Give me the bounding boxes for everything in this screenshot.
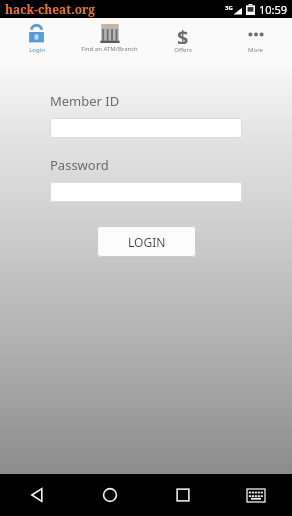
staticText: LOGIN [128, 234, 166, 250]
button[interactable]: LOGIN [97, 226, 196, 257]
staticText: 10:59 [259, 2, 288, 17]
button[interactable]: $ [146, 21, 219, 56]
staticText: More [248, 46, 263, 54]
button[interactable]: Recents [146, 474, 219, 516]
button[interactable]: Home [73, 474, 146, 516]
button[interactable]: Login [0, 21, 73, 56]
staticText: hack-cheat.org [5, 1, 96, 17]
button[interactable] [50, 182, 242, 202]
button[interactable] [50, 118, 242, 138]
staticText: Find an ATM/Branch [81, 45, 138, 53]
staticText: Member ID [50, 92, 120, 110]
button[interactable]: More [219, 21, 292, 56]
staticText: Password [50, 156, 109, 174]
button[interactable]: Back [0, 474, 73, 516]
staticText: 3G [225, 4, 233, 12]
staticText: Offers [174, 46, 192, 54]
button[interactable]: Find an ATM/Branch [73, 21, 146, 55]
staticText: $ [177, 24, 189, 44]
staticText: Login [29, 46, 45, 54]
button[interactable]: Keyboard [219, 474, 292, 516]
